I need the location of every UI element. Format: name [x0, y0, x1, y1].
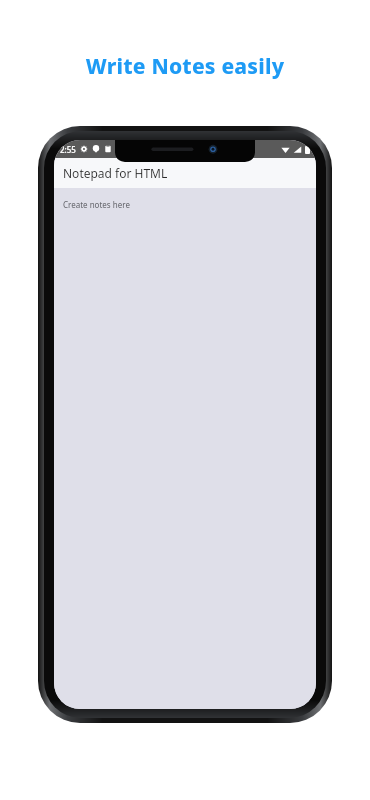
staticText: Create notes here: [63, 199, 130, 210]
staticText: 2:55: [60, 144, 76, 155]
button[interactable]: Create notes here: [54, 188, 316, 709]
button[interactable]: Notepad for HTML: [54, 158, 316, 188]
staticText: Notepad for HTML: [63, 165, 168, 181]
staticText: Write Notes easily: [0, 52, 370, 81]
